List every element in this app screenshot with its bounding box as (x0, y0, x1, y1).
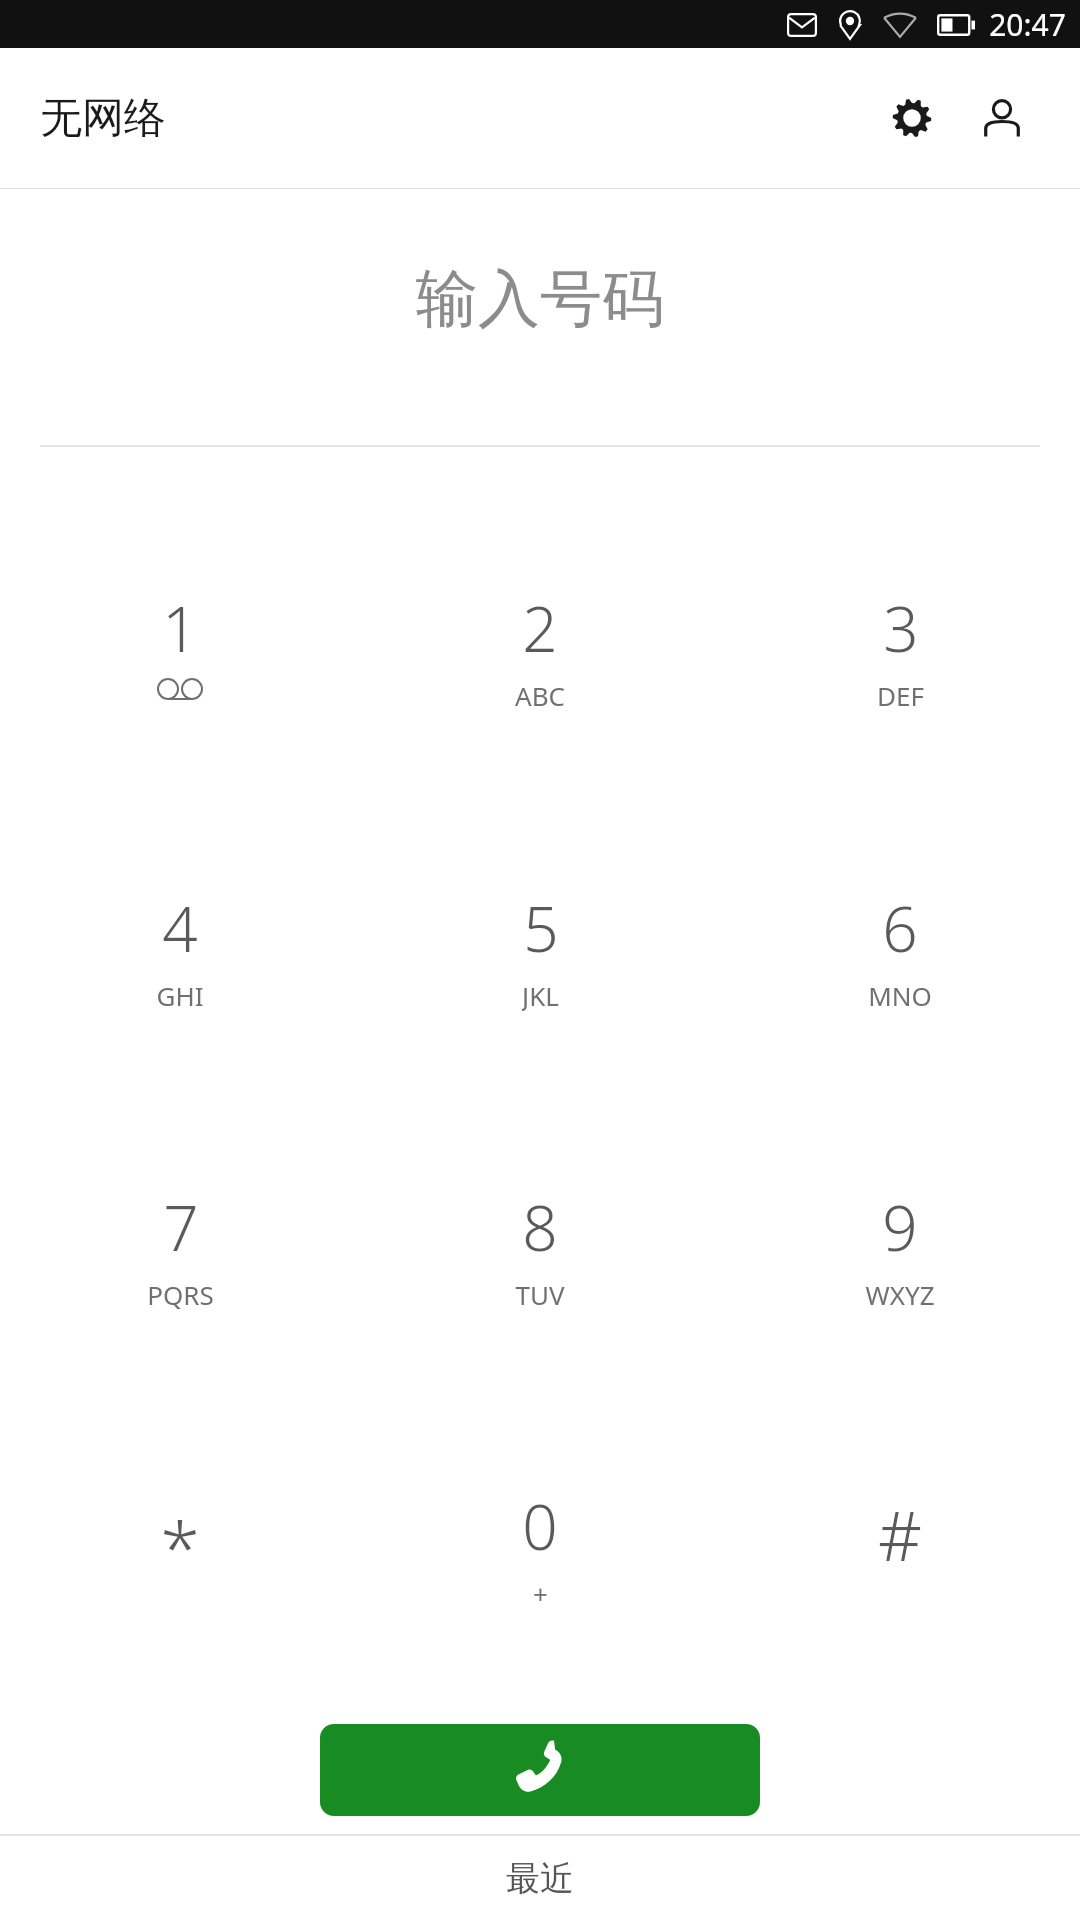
staticText: 0 (522, 1484, 558, 1568)
staticText: JKL (522, 978, 559, 1012)
button[interactable]: Settings (874, 80, 950, 156)
button[interactable]: 0 (360, 1397, 720, 1696)
staticText: 9 (882, 1185, 918, 1269)
staticText: DEF (877, 678, 924, 712)
staticText: 4 (162, 886, 198, 970)
staticText: + (533, 1576, 548, 1610)
staticText: MNO (868, 978, 932, 1012)
staticText: 2 (522, 586, 558, 670)
button[interactable]: 3 (720, 499, 1080, 799)
button[interactable]: 4 (0, 799, 360, 1098)
staticText: 1 (162, 586, 198, 670)
button[interactable]: Contacts (964, 80, 1040, 156)
button[interactable]: 8 (360, 1098, 720, 1397)
button[interactable]: 2 (360, 499, 720, 799)
staticText: ABC (515, 678, 565, 712)
staticText: 无网络 (40, 92, 166, 145)
button[interactable]: Call (320, 1724, 760, 1816)
staticText: * (160, 1498, 200, 1568)
button[interactable]: 输入号码 (0, 189, 1080, 445)
staticText: # (878, 1488, 922, 1568)
button[interactable]: 6 (720, 799, 1080, 1098)
button[interactable]: # (720, 1397, 1080, 1696)
staticText: 7 (163, 1185, 199, 1269)
staticText: PQRS (147, 1277, 214, 1311)
staticText: 输入号码 (416, 260, 664, 338)
staticText: 最近 (506, 1857, 574, 1900)
button[interactable]: 9 (720, 1098, 1080, 1397)
staticText: 5 (523, 886, 559, 970)
staticText: GHI (156, 978, 204, 1012)
button[interactable]: 5 (360, 799, 720, 1098)
staticText: WXYZ (865, 1277, 935, 1311)
button[interactable]: * (0, 1397, 360, 1696)
staticText: 6 (882, 886, 918, 970)
staticText: 20:47 (989, 4, 1066, 45)
button[interactable]: 7 (0, 1098, 360, 1397)
staticText: 3 (883, 586, 919, 670)
staticText: 8 (522, 1185, 558, 1269)
button[interactable]: 1 (0, 499, 360, 799)
staticText: TUV (515, 1277, 565, 1311)
button[interactable]: 最近 (0, 1836, 1080, 1920)
